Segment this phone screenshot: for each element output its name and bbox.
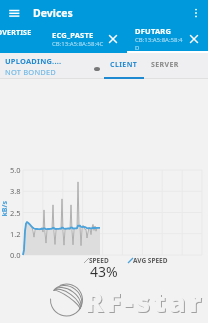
staticText: 0.0 [10,250,21,260]
button[interactable]: Menu [0,0,28,26]
staticText: 5.0 [10,165,21,175]
staticText: ECG_PASTE [52,30,94,40]
staticText: CB:13:A5:8A:58:4C [52,40,104,48]
staticText: ADVERTISER [0,28,36,48]
button[interactable]: DFUTARG [127,25,208,53]
button[interactable]: Disconnect DFUTARG [186,31,202,47]
staticText: Devices [33,6,73,20]
button[interactable]: More options [184,1,208,25]
staticText: AVG SPEED [133,256,168,265]
button[interactable]: Disconnect ECG_PASTE [105,31,121,47]
staticText: NOT BONDED [5,67,57,77]
button[interactable]: SERVER [144,53,186,77]
button[interactable]: ADVERTISER [0,25,44,53]
staticText: CB:13:A5:8A:58:4D [135,36,186,52]
button[interactable]: CLIENT [104,53,144,77]
staticText: SERVER [151,60,179,70]
staticText: 3.8 [10,186,21,196]
staticText: RF-star [86,284,206,321]
staticText: SPEED [89,256,109,265]
staticText: UPLOADING.... [5,56,62,66]
staticText: 43% [90,262,118,281]
staticText: CLIENT [110,60,138,70]
staticText: RF-star [85,283,205,320]
staticText: DFUTARG [135,26,172,36]
staticText: 2.5 [10,208,21,218]
staticText: kB/s [0,200,9,216]
button[interactable]: ECG_PASTE [44,25,127,53]
staticText: 1.2 [10,229,21,239]
